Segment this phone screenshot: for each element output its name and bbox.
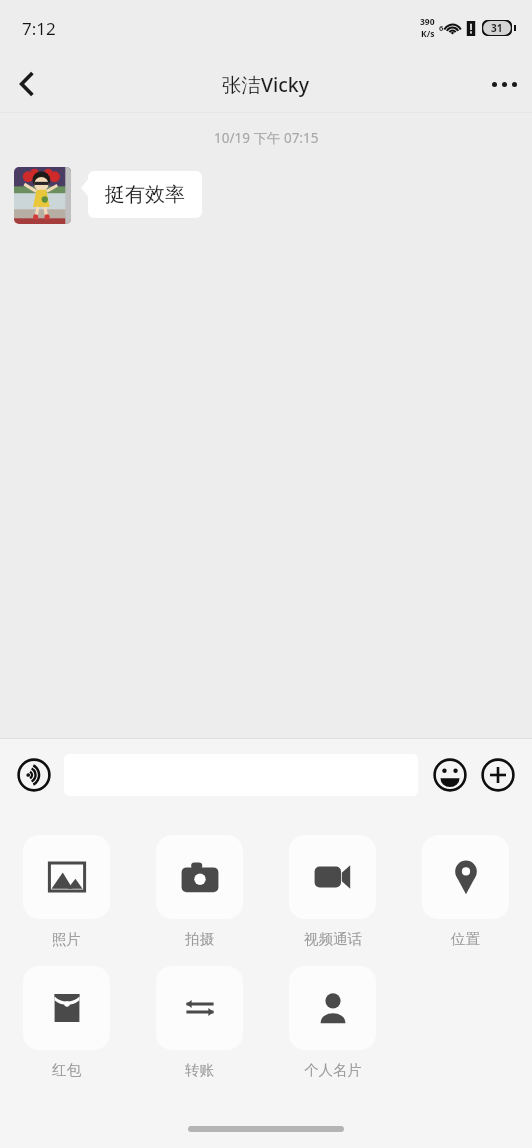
staticText: 个人名片: [304, 1061, 362, 1079]
button[interactable]: 个人名片: [266, 966, 399, 1079]
button[interactable]: 视频通话: [266, 835, 399, 948]
button[interactable]: 拍摄: [133, 835, 266, 948]
staticText: 位置: [451, 930, 480, 948]
staticText: 照片: [52, 930, 81, 948]
button[interactable]: 位置: [399, 835, 532, 948]
staticText: 张洁Vicky: [222, 71, 310, 98]
button[interactable]: Avatar: [14, 167, 71, 224]
button[interactable]: Emoji: [428, 753, 472, 797]
staticText: K/s: [421, 28, 435, 40]
button[interactable]: 转账: [133, 966, 266, 1079]
button[interactable]: 红包: [0, 966, 133, 1079]
button[interactable]: More options: [476, 56, 532, 112]
button[interactable]: 挺有效率: [88, 171, 202, 218]
staticText: 390: [420, 16, 435, 28]
staticText: 转账: [185, 1061, 214, 1079]
staticText: 7:12: [22, 17, 56, 40]
staticText: 10/19 下午 07:15: [214, 129, 319, 147]
staticText: 红包: [52, 1061, 81, 1079]
staticText: 挺有效率: [105, 182, 185, 207]
staticText: 31: [491, 21, 503, 35]
button[interactable]: More functions: [476, 753, 520, 797]
button[interactable]: 照片: [0, 835, 133, 948]
button[interactable]: Back: [0, 56, 56, 112]
staticText: 拍摄: [185, 930, 214, 948]
button[interactable]: Voice input: [12, 753, 56, 797]
staticText: 视频通话: [304, 930, 362, 948]
staticText: 6: [439, 23, 444, 33]
